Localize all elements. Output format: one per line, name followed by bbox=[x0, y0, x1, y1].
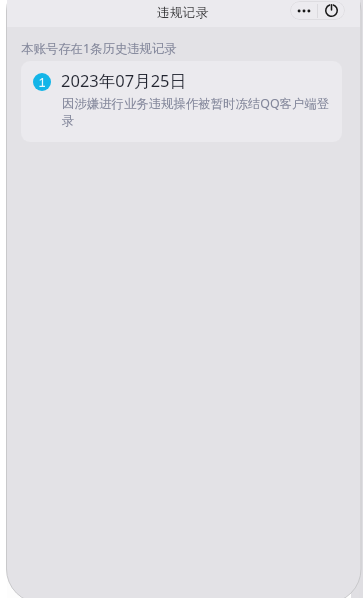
staticText: 因涉嫌进行业务违规操作被暂时冻结QQ客户端登 bbox=[62, 95, 330, 113]
button[interactable]: 2023年07月25日 bbox=[21, 61, 342, 142]
staticText: 违规记录 bbox=[157, 5, 209, 21]
button[interactable]: More options bbox=[290, 1, 317, 20]
staticText: 录 bbox=[62, 112, 75, 129]
staticText: 本账号存在1条历史违规记录 bbox=[21, 40, 177, 57]
button[interactable]: Close mini program bbox=[318, 1, 345, 20]
staticText: 2023年07月25日 bbox=[61, 69, 187, 92]
